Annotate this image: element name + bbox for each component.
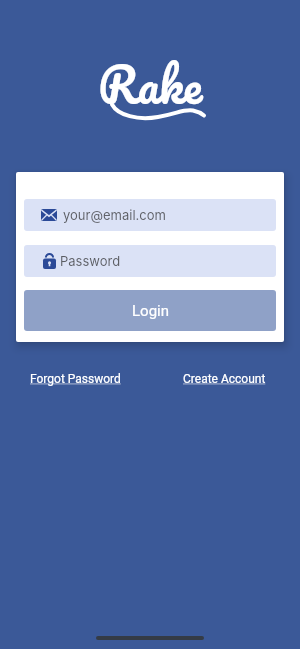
staticText: your@email.com bbox=[63, 207, 166, 223]
button[interactable]: Password bbox=[24, 245, 276, 277]
staticText: Forgot Password bbox=[30, 372, 121, 386]
staticText: Rake bbox=[98, 44, 203, 125]
staticText: Password bbox=[60, 253, 121, 269]
button[interactable]: Forgot Password bbox=[30, 372, 121, 386]
button[interactable]: Login bbox=[24, 290, 276, 331]
button[interactable]: your@email.com bbox=[24, 199, 276, 231]
button[interactable]: Create Account bbox=[183, 372, 266, 386]
staticText: Create Account bbox=[183, 372, 266, 386]
staticText: Login bbox=[132, 302, 169, 320]
